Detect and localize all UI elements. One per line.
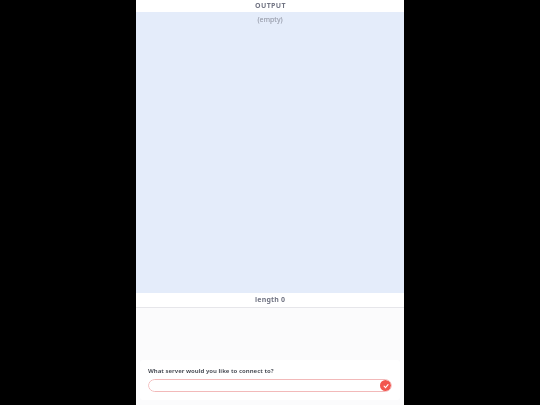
button[interactable]: Submit — [148, 379, 392, 392]
staticText: OUTPUT — [255, 1, 286, 11]
button[interactable]: Submit — [380, 380, 391, 391]
staticText: (empty) — [136, 15, 404, 25]
staticText: length 0 — [255, 295, 286, 305]
staticText: What server would you like to connect to… — [148, 367, 274, 375]
